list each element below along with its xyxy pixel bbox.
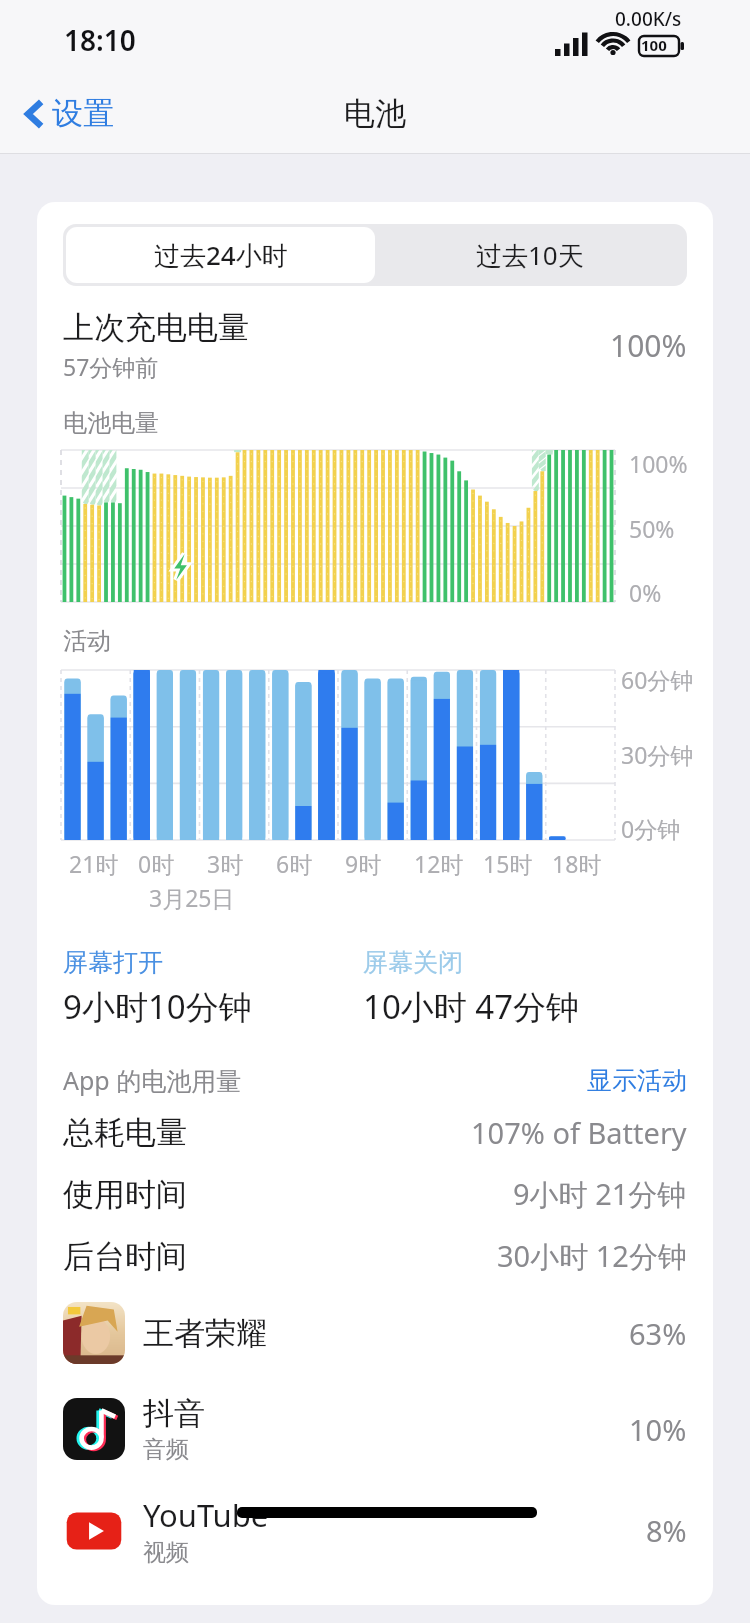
staticText: 100% <box>629 448 688 479</box>
staticText: 100% <box>610 325 687 366</box>
staticText: 50% <box>629 513 675 544</box>
staticText: 63% <box>629 1314 687 1353</box>
staticText: 活动 <box>63 626 111 656</box>
staticText: 上次充电电量 <box>63 308 249 347</box>
button[interactable]: 过去24小时 <box>66 227 375 283</box>
staticText: 60分钟 <box>621 664 694 695</box>
staticText: 18时 <box>552 848 602 879</box>
staticText: 电池 <box>344 94 406 133</box>
staticText: 过去24小时 <box>154 237 288 273</box>
staticText: 屏幕关闭 <box>363 947 463 978</box>
staticText: 电池电量 <box>63 408 159 438</box>
staticText: 抖音 <box>143 1394 205 1433</box>
button[interactable]: YouTube <box>37 1486 713 1575</box>
staticText: 使用时间 <box>63 1175 513 1214</box>
staticText: 后台时间 <box>63 1237 497 1276</box>
staticText: 9小时 21分钟 <box>513 1174 687 1214</box>
button[interactable]: 设置 <box>16 88 122 139</box>
staticText: 100 <box>641 35 667 55</box>
staticText: 3月25日 <box>149 882 235 913</box>
staticText: 30小时 12分钟 <box>497 1236 687 1276</box>
button[interactable]: 显示活动 <box>587 1065 687 1096</box>
staticText: 设置 <box>52 94 114 133</box>
staticText: 30分钟 <box>621 739 694 770</box>
staticText: 过去10天 <box>476 237 584 273</box>
staticText: App 的电池用量 <box>63 1063 587 1097</box>
staticText: 总耗电量 <box>63 1113 471 1152</box>
button[interactable]: 抖音 <box>37 1386 713 1472</box>
button[interactable]: 后台时间 <box>37 1236 713 1276</box>
staticText: 18:10 <box>64 21 136 59</box>
staticText: 10% <box>629 1410 687 1449</box>
staticText: 9时 <box>345 848 382 879</box>
button[interactable]: 王者荣耀 <box>37 1294 713 1372</box>
staticText: 0分钟 <box>621 813 681 844</box>
staticText: 57分钟前 <box>63 351 159 382</box>
button[interactable]: 使用时间 <box>37 1174 713 1214</box>
staticText: 9小时10分钟 <box>63 984 252 1029</box>
staticText: 107% of Battery <box>471 1113 687 1152</box>
staticText: 8% <box>646 1511 687 1550</box>
staticText: 21时 <box>69 848 119 879</box>
staticText: 10小时 47分钟 <box>363 984 580 1029</box>
staticText: 0时 <box>138 848 175 879</box>
button[interactable]: 过去10天 <box>375 227 684 283</box>
staticText: 15时 <box>483 848 533 879</box>
staticText: 6时 <box>276 848 313 879</box>
staticText: 显示活动 <box>587 1065 687 1096</box>
button[interactable]: 总耗电量 <box>37 1113 713 1152</box>
staticText: 王者荣耀 <box>143 1314 267 1353</box>
staticText: 12时 <box>414 848 464 879</box>
staticText: 视频 <box>143 1538 189 1567</box>
staticText: 音频 <box>143 1435 189 1464</box>
staticText: 0.00K/s <box>615 6 682 32</box>
staticText: 0% <box>629 577 662 608</box>
staticText: YouTube <box>143 1494 269 1536</box>
staticText: 3时 <box>207 848 244 879</box>
staticText: 屏幕打开 <box>63 947 163 978</box>
